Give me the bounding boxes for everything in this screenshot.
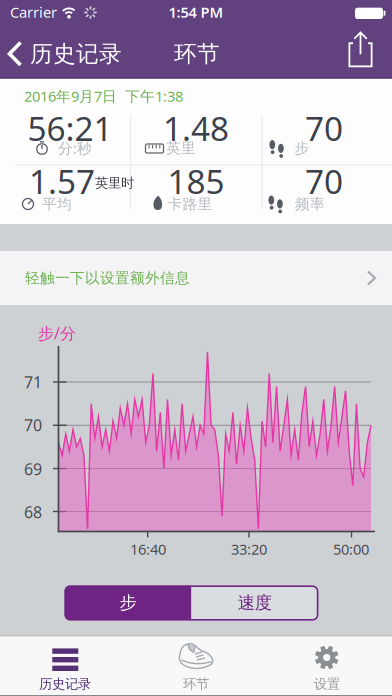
staticText: 70: [305, 159, 343, 203]
staticText: Carrier: [10, 2, 57, 22]
staticText: 1.48: [163, 106, 229, 150]
button[interactable]: 历史记录: [3, 33, 143, 75]
staticText: 速度: [238, 592, 272, 613]
staticText: 步/分: [38, 322, 76, 344]
staticText: 步: [294, 139, 309, 157]
staticText: 分:秒: [58, 138, 92, 158]
staticText: 50:00: [333, 539, 369, 559]
button[interactable]: 历史记录: [0, 636, 131, 696]
staticText: 步: [120, 592, 137, 613]
staticText: 频率: [295, 195, 325, 213]
staticText: 70: [24, 414, 42, 436]
staticText: 轻触一下以设置额外信息: [25, 269, 190, 287]
staticText: 平均: [42, 195, 72, 213]
staticText: 英里时: [95, 175, 134, 191]
staticText: 历史记录: [30, 40, 122, 68]
staticText: 185: [167, 159, 224, 203]
staticText: 环节: [174, 40, 220, 68]
staticText: 68: [24, 501, 42, 523]
staticText: 70: [305, 106, 343, 150]
button[interactable]: Share: [348, 31, 372, 68]
staticText: 卡路里: [167, 195, 212, 213]
button[interactable]: 设置: [261, 636, 392, 696]
staticText: 设置: [314, 676, 340, 692]
button[interactable]: 速度: [191, 586, 318, 620]
staticText: 2016年9月7日 下午1:38: [24, 86, 183, 106]
staticText: 69: [24, 458, 42, 480]
staticText: 33:20: [231, 539, 267, 559]
button[interactable]: 环节: [131, 636, 261, 696]
button[interactable]: 步: [65, 586, 191, 620]
staticText: 英里: [166, 139, 196, 157]
staticText: 环节: [183, 676, 209, 692]
staticText: 71: [24, 371, 42, 393]
button[interactable]: 轻触一下以设置额外信息: [0, 251, 392, 305]
staticText: 历史记录: [39, 676, 91, 692]
staticText: 16:40: [130, 539, 166, 559]
staticText: 1.57: [29, 159, 95, 203]
staticText: 56:21: [27, 106, 112, 150]
staticText: 1:54 PM: [168, 2, 223, 22]
